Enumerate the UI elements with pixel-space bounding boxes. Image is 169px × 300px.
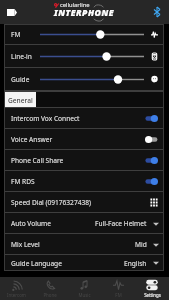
button[interactable]: Voice Answer — [4, 129, 164, 150]
button[interactable]: Guide Language — [4, 255, 164, 271]
button[interactable]: FM RDS — [4, 171, 164, 192]
staticText: Auto Volume — [11, 219, 95, 228]
staticText: Intercom — [7, 292, 26, 298]
staticText: Line-in — [11, 52, 32, 61]
staticText: Guide — [11, 75, 30, 84]
button[interactable] — [36, 92, 164, 108]
staticText: Phone Call Share — [11, 156, 145, 165]
staticText: Voice Answer — [11, 135, 145, 144]
staticText: FM — [11, 30, 21, 39]
button[interactable]: FM — [101, 277, 135, 300]
other: FM — [151, 31, 158, 38]
staticText: Settings — [144, 292, 161, 298]
staticText: Mix Level — [11, 240, 135, 249]
button[interactable]: On — [145, 177, 158, 186]
button[interactable]: On — [145, 156, 158, 165]
button[interactable]: Speed Dial (09176327438) — [4, 192, 164, 213]
staticText: Intercom Vox Connect — [11, 114, 145, 123]
other: Guide — [151, 76, 158, 83]
button[interactable]: FM — [4, 24, 164, 45]
button[interactable]: Intercom Vox Connect — [4, 108, 164, 129]
button[interactable]: Guide — [4, 68, 164, 91]
staticText: Mid — [135, 240, 147, 249]
staticText: Phone — [43, 292, 57, 298]
staticText: FM — [115, 292, 122, 298]
button[interactable]: Phone — [33, 277, 67, 300]
button[interactable]: Keypad — [150, 198, 158, 207]
staticText: Speed Dial (09176327438) — [11, 198, 150, 207]
other: Line in — [151, 53, 158, 60]
staticText: Guide Language — [11, 259, 124, 268]
button[interactable]: Line-in — [4, 45, 164, 68]
button[interactable]: Settings — [135, 277, 169, 300]
button[interactable]: On — [145, 114, 158, 123]
button[interactable]: Intercom — [0, 277, 33, 300]
other: Battery — [7, 9, 17, 16]
button[interactable]: Phone Call Share — [4, 150, 164, 171]
staticText: cellularline — [60, 1, 90, 9]
button[interactable]: Mix Level — [4, 234, 164, 255]
staticText: FM RDS — [11, 177, 145, 186]
other: Bluetooth — [154, 7, 160, 17]
staticText: Full-Face Helmet — [95, 219, 147, 228]
button[interactable]: General — [4, 92, 36, 108]
button[interactable]: Music — [67, 277, 101, 300]
staticText: INTERPHONE — [54, 7, 115, 19]
button[interactable]: Auto Volume — [4, 213, 164, 234]
button[interactable]: Off — [145, 135, 158, 144]
staticText: General — [8, 96, 33, 105]
staticText: Music — [78, 292, 91, 298]
staticText: English — [124, 259, 147, 268]
